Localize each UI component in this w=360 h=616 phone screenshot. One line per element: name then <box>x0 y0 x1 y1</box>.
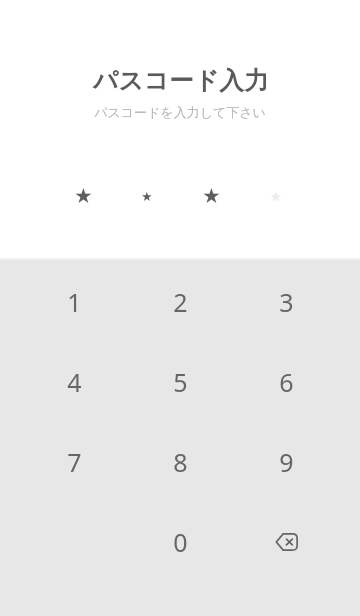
button[interactable]: 3 <box>240 262 360 342</box>
staticText: 4 <box>67 365 82 399</box>
button[interactable]: 9 <box>240 422 360 502</box>
button[interactable]: 8 <box>120 422 240 502</box>
button[interactable]: 6 <box>240 342 360 422</box>
staticText: 5 <box>173 365 188 399</box>
button[interactable]: 1 <box>0 262 120 342</box>
staticText: ★ <box>202 184 221 208</box>
staticText: ★ <box>74 184 93 208</box>
staticText: パスコードを入力して下さい <box>94 104 266 120</box>
staticText: 1 <box>67 285 82 319</box>
staticText: 0 <box>173 525 188 559</box>
staticText: 8 <box>173 445 188 479</box>
button[interactable]: 4 <box>0 342 120 422</box>
button[interactable]: 0 <box>120 502 240 582</box>
button[interactable]: Delete <box>240 502 360 582</box>
staticText: ★ <box>270 189 282 204</box>
staticText: 3 <box>279 285 294 319</box>
button[interactable]: 2 <box>120 262 240 342</box>
staticText: 7 <box>67 445 82 479</box>
staticText: 9 <box>279 445 294 479</box>
staticText: パスコード入力 <box>93 65 269 96</box>
staticText: ★ <box>141 189 153 204</box>
staticText: 6 <box>279 365 294 399</box>
button[interactable]: 7 <box>0 422 120 502</box>
staticText: 2 <box>173 285 188 319</box>
button[interactable]: 5 <box>120 342 240 422</box>
